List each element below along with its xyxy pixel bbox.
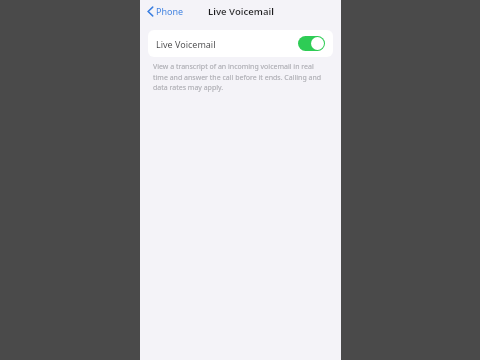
staticText: View a transcript of an incoming voicema… (153, 62, 328, 92)
button[interactable]: Phone (144, 2, 187, 20)
staticText: Phone (156, 5, 184, 17)
button[interactable]: Live Voicemail (148, 30, 333, 57)
staticText: Live Voicemail (208, 5, 274, 18)
staticText: Live Voicemail (156, 38, 216, 50)
button[interactable]: Live Voicemail toggle, on (298, 36, 325, 51)
